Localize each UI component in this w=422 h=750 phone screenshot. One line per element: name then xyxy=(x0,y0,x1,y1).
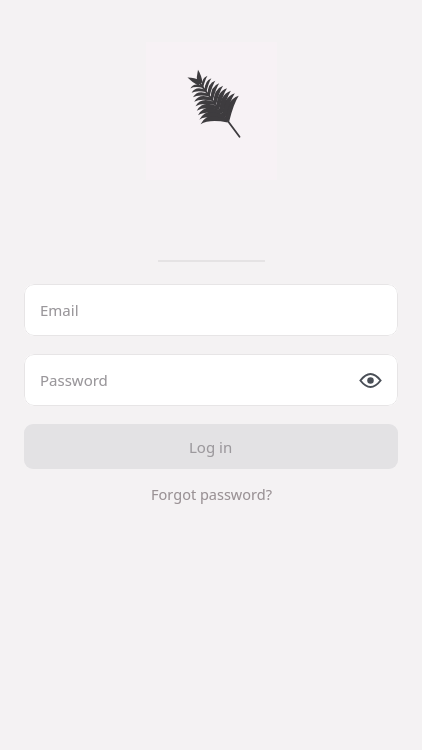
button[interactable]: Forgot password? xyxy=(141,479,282,509)
staticText: Forgot password? xyxy=(151,484,272,504)
button[interactable]: Show password xyxy=(352,362,388,398)
staticText: Password xyxy=(40,370,108,390)
staticText: Email xyxy=(40,300,79,320)
staticText: Log in xyxy=(189,437,233,457)
button[interactable]: Email xyxy=(24,284,398,336)
other: Logo xyxy=(180,76,244,140)
button[interactable]: Log in xyxy=(24,424,398,469)
button[interactable]: Password xyxy=(24,354,398,406)
